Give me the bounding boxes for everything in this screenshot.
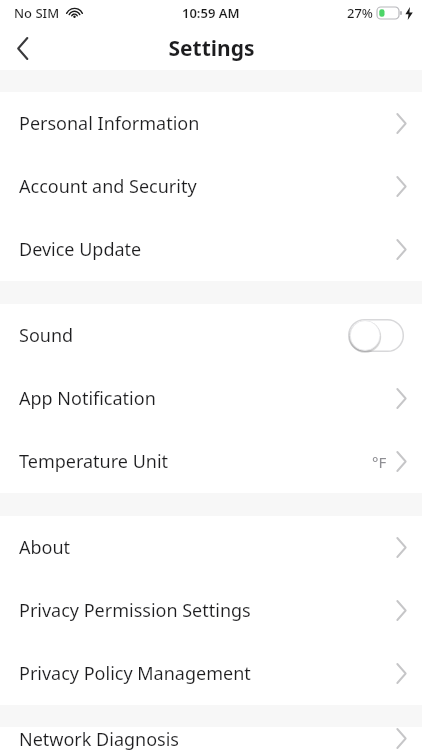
staticText: No SIM <box>14 4 60 22</box>
staticText: Settings <box>168 34 255 63</box>
button[interactable]: Back <box>0 26 46 70</box>
staticText: Personal Information <box>19 111 200 136</box>
staticText: App Notification <box>19 386 156 411</box>
button[interactable]: About <box>0 516 422 579</box>
staticText: Device Update <box>19 237 142 262</box>
button[interactable]: Network Diagnosis <box>0 727 422 750</box>
staticText: Account and Security <box>19 174 197 199</box>
staticText: Privacy Policy Management <box>19 661 251 686</box>
button[interactable]: Sound <box>0 304 422 367</box>
button[interactable]: Privacy Policy Management <box>0 642 422 705</box>
button[interactable]: Temperature Unit <box>0 430 422 493</box>
staticText: 27% <box>347 4 373 22</box>
staticText: Privacy Permission Settings <box>19 598 251 623</box>
staticText: 10:59 AM <box>182 4 240 22</box>
staticText: Network Diagnosis <box>19 727 179 750</box>
button[interactable]: App Notification <box>0 367 422 430</box>
button[interactable]: Personal Information <box>0 92 422 155</box>
staticText: About <box>19 535 71 560</box>
button[interactable]: Device Update <box>0 218 422 281</box>
button[interactable]: Account and Security <box>0 155 422 218</box>
button[interactable]: Sound toggle, off <box>348 319 404 352</box>
staticText: °F <box>372 452 387 472</box>
staticText: Temperature Unit <box>19 449 169 474</box>
button[interactable]: Privacy Permission Settings <box>0 579 422 642</box>
staticText: Sound <box>19 323 74 348</box>
